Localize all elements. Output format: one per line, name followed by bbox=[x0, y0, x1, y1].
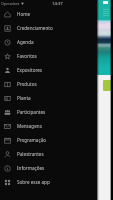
staticText: Mensagens bbox=[17, 123, 42, 129]
button[interactable]: Sobre esse app bbox=[0, 175, 97, 189]
staticText: Operadora bbox=[1, 1, 20, 6]
staticText: Informações bbox=[17, 165, 45, 171]
staticText: Favoritos bbox=[17, 53, 37, 59]
button[interactable]: Programação bbox=[0, 133, 97, 147]
staticText: Produtos bbox=[17, 81, 37, 87]
staticText: Agenda bbox=[17, 39, 34, 45]
button[interactable]: Palestrantes bbox=[0, 147, 97, 161]
staticText: Home bbox=[17, 11, 31, 17]
staticText: Programação bbox=[17, 137, 47, 143]
button[interactable]: Agenda bbox=[0, 35, 97, 49]
staticText: Participantes bbox=[17, 109, 46, 115]
button[interactable]: Informações bbox=[0, 161, 97, 175]
staticText: 14:37 bbox=[52, 1, 63, 7]
button[interactable]: Planta bbox=[0, 91, 97, 105]
button[interactable]: Participantes bbox=[0, 105, 97, 119]
staticText: Credenciamento bbox=[17, 25, 53, 31]
staticText: Planta bbox=[17, 95, 31, 101]
button[interactable]: Home bbox=[0, 7, 97, 21]
staticText: Expositores bbox=[17, 67, 43, 73]
button[interactable]: Expositores bbox=[0, 63, 97, 77]
button[interactable]: Credenciamento bbox=[0, 21, 97, 35]
button[interactable]: Mensagens bbox=[0, 119, 97, 133]
button[interactable]: Produtos bbox=[0, 77, 97, 91]
staticText: Sobre esse app bbox=[17, 179, 50, 185]
button[interactable]: Favoritos bbox=[0, 49, 97, 63]
staticText: Palestrantes bbox=[17, 151, 44, 157]
